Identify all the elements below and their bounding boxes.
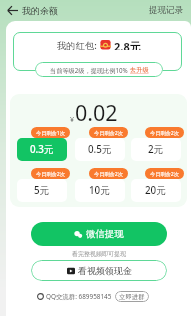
staticText: 5元 [34,184,50,197]
staticText: 20元 [145,184,167,197]
staticText: 看视频领现金 [78,265,132,276]
button[interactable]: 20元 [131,179,181,202]
staticText: 今日剩余2次 [94,129,123,136]
staticText: 微信提现 [86,228,124,240]
button[interactable]: 0.5元 [75,138,125,161]
button[interactable]: 10元 [75,179,125,202]
staticText: 今日剩余2次 [150,129,179,136]
staticText: 我的红包: [57,39,97,50]
button[interactable]: 提现记录 [149,5,183,16]
button[interactable]: 看视频领现金 [31,260,167,281]
button[interactable]: 微信提现 [31,222,167,246]
staticText: 提现记录 [149,5,183,16]
staticText: 0.02 [75,98,118,127]
button[interactable]: 2元 [131,138,181,161]
button[interactable]: 立即进群 [115,291,149,302]
staticText: 立即进群 [119,293,145,301]
staticText: 今日剩余2次 [150,170,179,177]
staticText: 今日剩余2次 [94,170,123,177]
staticText: 当前等级2级，提现比例10% [50,66,128,74]
button[interactable]: 去升级 [130,66,149,74]
staticText: QQ交流群: 689958145 [46,292,112,301]
staticText: 0.3元 [30,143,54,156]
button[interactable]: 5元 [17,179,67,202]
staticText: 0.5元 [88,143,112,156]
button[interactable]: Back [5,3,20,18]
button[interactable]: 0.3元 [17,138,67,161]
staticText: 去升级 [130,66,149,74]
staticText: ¥ [70,115,75,125]
staticText: 2元 [148,143,164,156]
staticText: 我的余额 [22,5,58,16]
staticText: 2.8元 [114,39,141,50]
staticText: 今日剩余1次 [36,129,65,136]
staticText: 看完整视频即可提现 [72,250,126,258]
staticText: 今日剩余2次 [36,170,65,177]
staticText: 10元 [89,184,111,197]
